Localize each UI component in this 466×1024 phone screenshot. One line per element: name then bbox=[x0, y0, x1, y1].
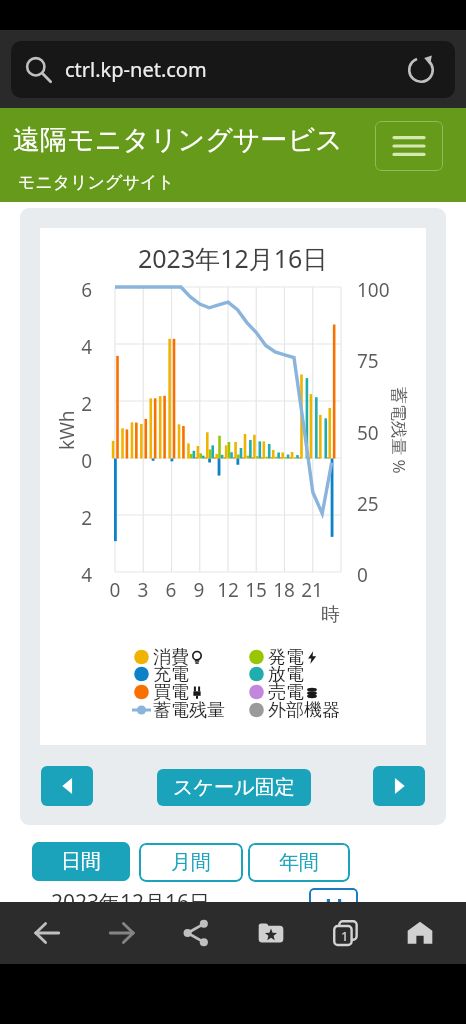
button[interactable]: Reload bbox=[401, 50, 441, 90]
staticText: 買電 bbox=[153, 681, 189, 703]
button[interactable]: Bookmarks bbox=[240, 902, 302, 964]
staticText: スケール固定 bbox=[173, 775, 295, 800]
staticText: 25 bbox=[357, 491, 397, 517]
button[interactable]: ctrl.kp-net.com bbox=[11, 41, 455, 98]
staticText: 6 bbox=[156, 577, 186, 603]
staticText: 0 bbox=[52, 448, 92, 474]
staticText: 外部機器 bbox=[268, 699, 340, 721]
staticText: 21 bbox=[297, 577, 327, 603]
staticText: 充電 bbox=[153, 663, 189, 685]
button[interactable]: 日間 bbox=[32, 842, 130, 881]
staticText: 日間 bbox=[61, 849, 101, 874]
staticText: 100 bbox=[357, 277, 397, 303]
button[interactable]: Home bbox=[389, 902, 451, 964]
staticText: 50 bbox=[357, 420, 397, 446]
staticText: 放電 bbox=[268, 663, 304, 685]
staticText: 消費 bbox=[153, 646, 189, 668]
button[interactable]: Tabs bbox=[315, 902, 377, 964]
staticText: kWh bbox=[54, 410, 78, 450]
button[interactable]: Pick date bbox=[309, 888, 358, 928]
staticText: 売電 bbox=[268, 681, 304, 703]
staticText: 2 bbox=[52, 505, 92, 531]
staticText: 1 bbox=[341, 927, 349, 945]
staticText: 2 bbox=[52, 391, 92, 417]
button[interactable]: Share bbox=[165, 902, 227, 964]
staticText: 15 bbox=[241, 577, 271, 603]
staticText: 4 bbox=[52, 334, 92, 360]
staticText: 年間 bbox=[279, 850, 319, 875]
button[interactable]: Back bbox=[16, 902, 78, 964]
staticText: 2023年12月16日 bbox=[138, 241, 328, 275]
staticText: 遠隔モニタリングサービス bbox=[13, 123, 343, 157]
staticText: 18 bbox=[269, 577, 299, 603]
staticText: 蓄電残量 bbox=[153, 699, 225, 721]
button[interactable]: Forward bbox=[91, 902, 153, 964]
staticText: 0 bbox=[357, 562, 397, 588]
staticText: 発電 bbox=[268, 646, 304, 668]
staticText: 蓄電残量 % bbox=[388, 387, 411, 474]
staticText: 時 bbox=[321, 603, 340, 627]
staticText: 4 bbox=[52, 562, 92, 588]
staticText: モニタリングサイト bbox=[18, 172, 175, 193]
button[interactable]: Previous bbox=[41, 766, 93, 806]
staticText: 2023年12月16日 bbox=[51, 888, 211, 917]
button[interactable]: Menu bbox=[375, 121, 443, 171]
staticText: 6 bbox=[52, 277, 92, 303]
staticText: 0 bbox=[100, 577, 130, 603]
button[interactable]: 年間 bbox=[248, 843, 350, 882]
staticText: 75 bbox=[357, 348, 397, 374]
button[interactable]: Next bbox=[373, 766, 425, 806]
button[interactable]: スケール固定 bbox=[157, 769, 311, 806]
staticText: 9 bbox=[184, 577, 214, 603]
staticText: ctrl.kp-net.com bbox=[65, 56, 207, 83]
staticText: 3 bbox=[128, 577, 158, 603]
staticText: 月間 bbox=[171, 850, 211, 875]
staticText: 12 bbox=[213, 577, 243, 603]
button[interactable]: 月間 bbox=[139, 843, 243, 882]
